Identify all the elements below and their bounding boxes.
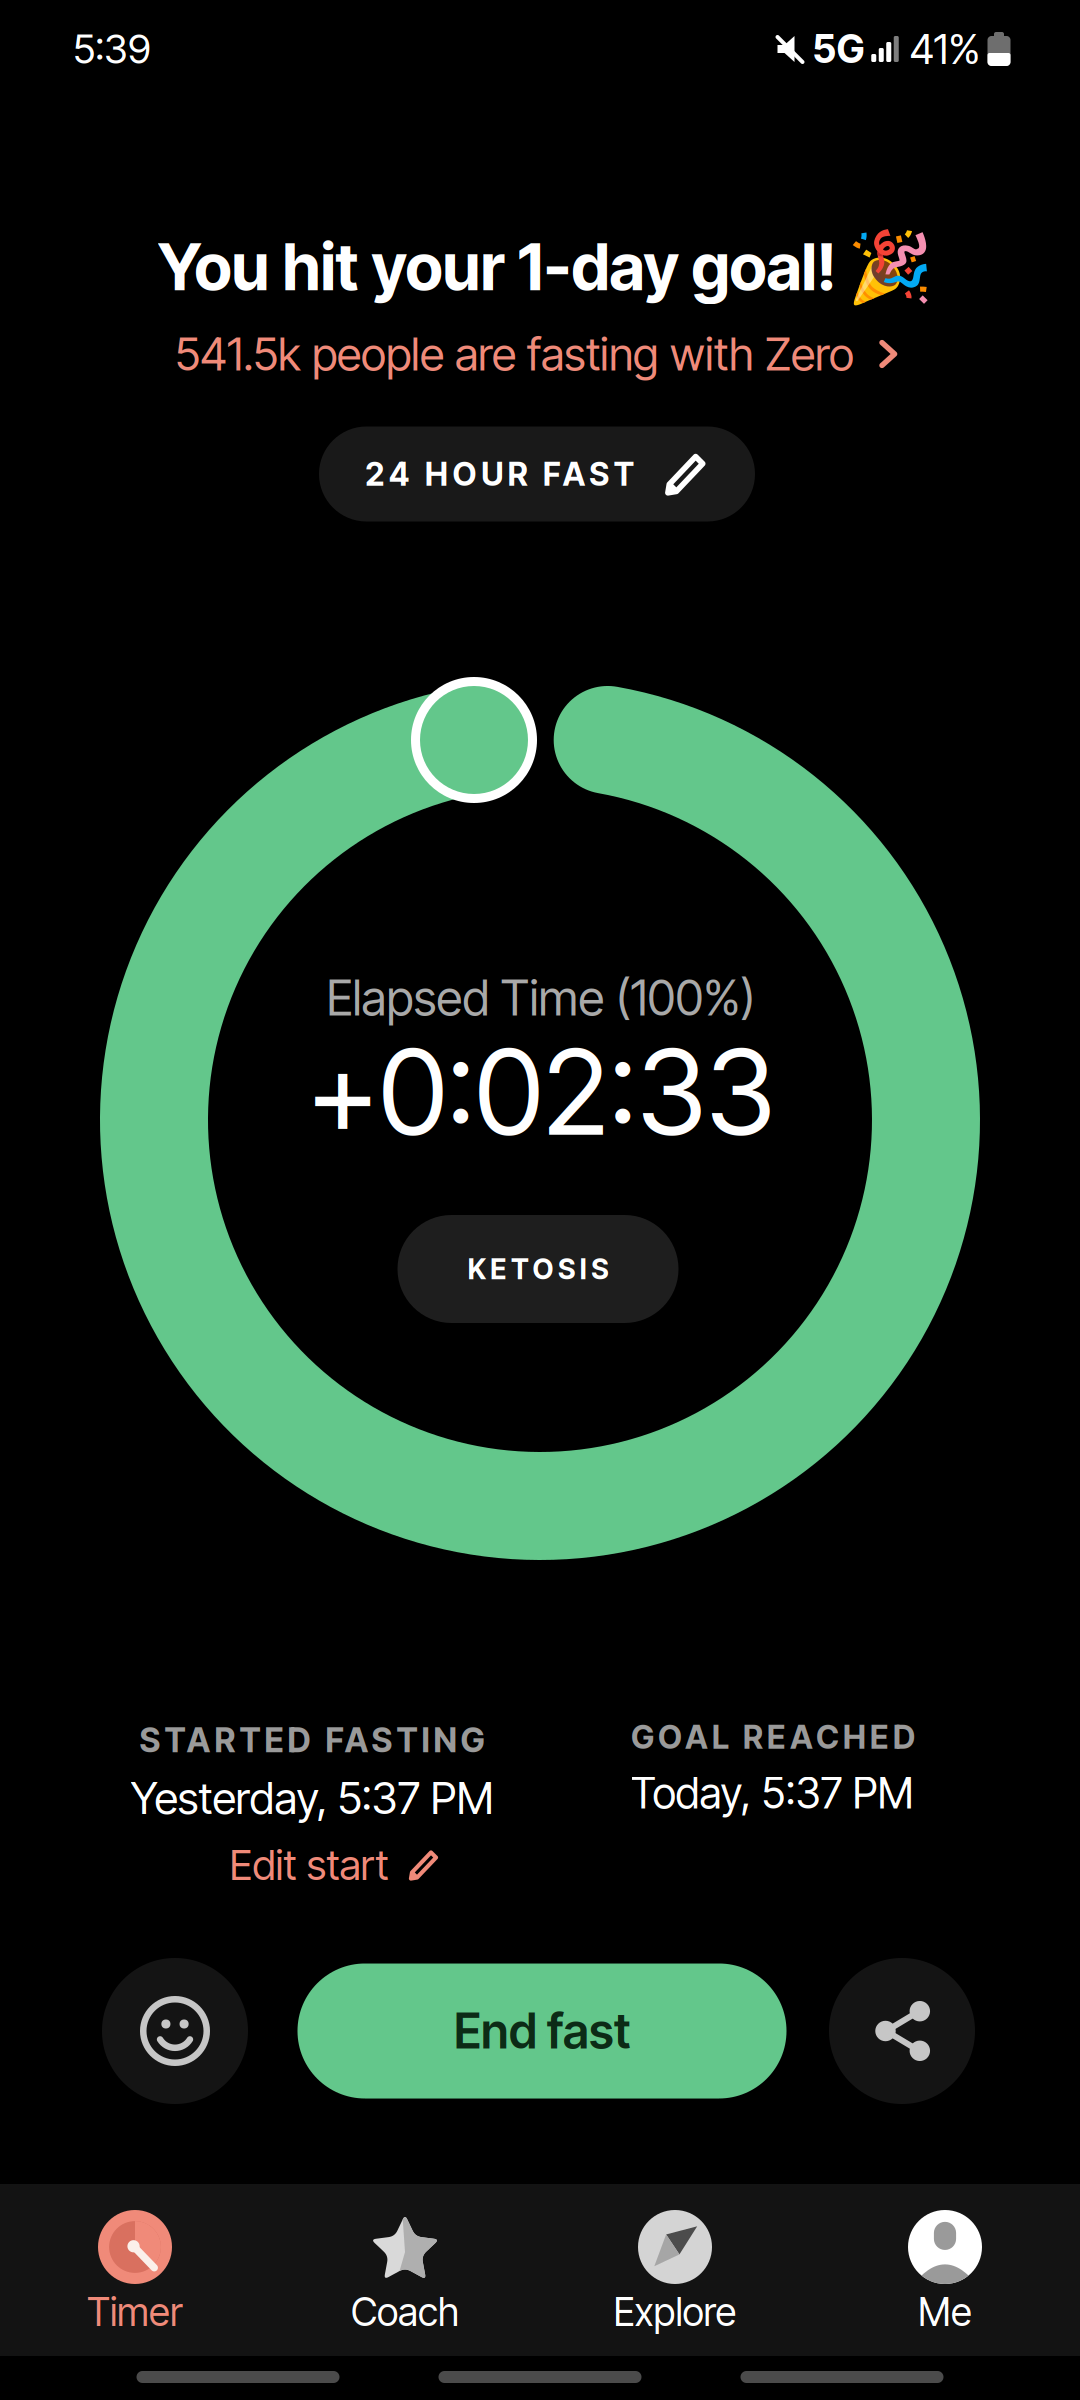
staticText: Today, 5:37 PM xyxy=(630,1767,913,1819)
button[interactable]: Mood xyxy=(102,1958,248,2104)
staticText: End fast xyxy=(454,2002,630,2060)
staticText: +0:02:33 xyxy=(307,1021,775,1163)
button[interactable]: Explore xyxy=(540,2184,810,2356)
button[interactable]: Timer xyxy=(0,2184,270,2356)
staticText: Timer xyxy=(87,2289,183,2335)
staticText: Coach xyxy=(351,2289,459,2335)
staticText: GOAL REACHED xyxy=(631,1718,915,1756)
button[interactable]: Coach xyxy=(270,2184,540,2356)
staticText: 🎉 xyxy=(846,226,932,308)
staticText: STARTED FASTING xyxy=(139,1720,484,1760)
staticText: Edit start xyxy=(229,1840,388,1890)
staticText: Yesterday, 5:37 PM xyxy=(130,1771,493,1825)
staticText: Explore xyxy=(613,2289,736,2335)
staticText: Me xyxy=(918,2289,972,2335)
button[interactable]: End fast xyxy=(297,1963,786,2098)
staticText: KETOSIS xyxy=(468,1252,608,1286)
button[interactable]: Me xyxy=(810,2184,1080,2356)
staticText: You hit your 1-day goal! xyxy=(157,228,836,306)
staticText: 5G xyxy=(812,26,864,72)
staticText: 24 HOUR FAST xyxy=(365,455,634,493)
button[interactable]: 24 HOUR FAST xyxy=(319,426,755,521)
staticText: 5:39 xyxy=(73,25,151,73)
staticText: Elapsed Time (100%) xyxy=(326,969,755,1027)
button[interactable]: Share xyxy=(829,1958,975,2104)
button[interactable]: KETOSIS xyxy=(397,1215,678,1323)
button[interactable]: Edit start xyxy=(229,1840,440,1890)
staticText: 41% xyxy=(909,24,980,74)
staticText: 541.5k people are fasting with Zero xyxy=(175,327,854,381)
button[interactable]: 541.5k people are fasting with Zero xyxy=(175,327,903,381)
